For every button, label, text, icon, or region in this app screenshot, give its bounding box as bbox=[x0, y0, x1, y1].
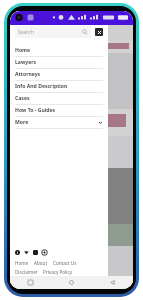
button[interactable]: Disclaimer bbox=[15, 269, 38, 275]
button[interactable]: Search bbox=[15, 26, 91, 38]
staticText: How To - Guides bbox=[15, 107, 103, 114]
staticText: Disclaimer bbox=[15, 269, 38, 275]
button[interactable]: Home bbox=[15, 260, 29, 266]
button[interactable]: Close menu bbox=[95, 28, 103, 36]
other: Search bbox=[82, 29, 88, 35]
button[interactable]: YouTube bbox=[33, 250, 38, 255]
button[interactable]: More bbox=[10, 117, 108, 129]
staticText: Home bbox=[15, 260, 29, 266]
button[interactable]: Home bbox=[10, 45, 108, 57]
button[interactable]: Attorneys bbox=[10, 69, 108, 81]
button[interactable]: Home bbox=[67, 278, 76, 287]
button[interactable]: Contact Us bbox=[53, 260, 77, 266]
button[interactable]: Instagram bbox=[42, 250, 47, 255]
staticText: Privacy Policy bbox=[43, 269, 72, 275]
staticText: Info And Description bbox=[15, 83, 103, 90]
staticText: Home bbox=[15, 47, 103, 54]
button[interactable]: Info And Description bbox=[10, 81, 108, 93]
button[interactable]: About bbox=[34, 260, 48, 266]
staticText: Attorneys bbox=[15, 71, 103, 78]
staticText: Search bbox=[18, 29, 82, 36]
button[interactable]: Privacy Policy bbox=[43, 269, 72, 275]
button[interactable]: Facebook bbox=[15, 250, 20, 255]
staticText: Cases bbox=[15, 95, 103, 102]
staticText: Contact Us bbox=[53, 260, 77, 266]
staticText: Lawyers bbox=[15, 59, 103, 66]
button[interactable]: Back bbox=[108, 278, 117, 287]
button[interactable]: Twitter bbox=[24, 250, 29, 255]
button[interactable]: Lawyers bbox=[10, 57, 108, 69]
button[interactable]: Cases bbox=[10, 93, 108, 105]
staticText: More bbox=[15, 119, 98, 126]
button[interactable]: How To - Guides bbox=[10, 105, 108, 117]
staticText: About bbox=[34, 260, 48, 266]
button[interactable]: Recents bbox=[26, 278, 35, 287]
